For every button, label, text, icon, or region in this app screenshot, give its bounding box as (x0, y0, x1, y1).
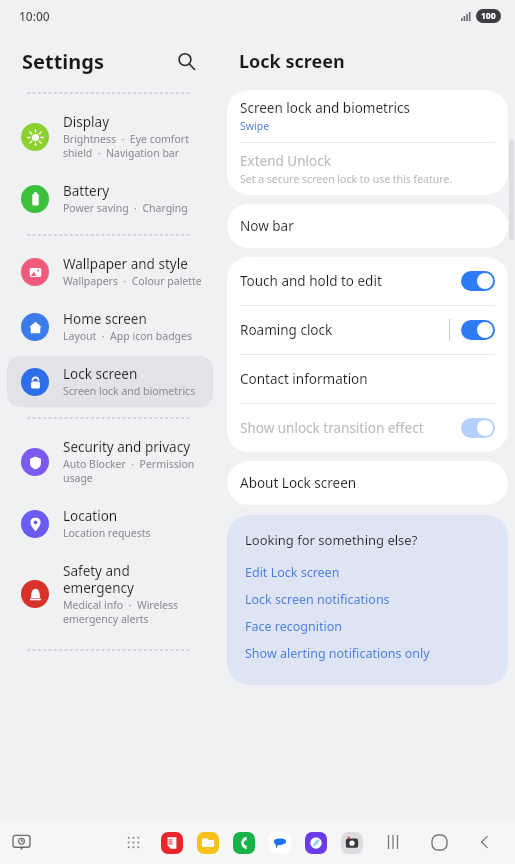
button[interactable]: Now bar (227, 204, 508, 248)
staticText: Power saving · Charging (63, 201, 188, 215)
button[interactable]: Security and privacy (7, 429, 213, 494)
button[interactable]: Show alerting notifications only (245, 640, 430, 667)
button[interactable]: messages (266, 829, 293, 856)
staticText: Display (63, 113, 110, 131)
button[interactable]: Edit Lock screen (245, 559, 340, 586)
button[interactable]: Toggle (461, 271, 495, 291)
button[interactable]: Safety and emergency (7, 553, 213, 635)
button[interactable]: Toggle (461, 320, 495, 340)
staticText: Safety and emergency (63, 562, 203, 597)
staticText: Set a secure screen lock to use this fea… (240, 172, 453, 186)
button[interactable]: Show unlock transition effect (227, 404, 508, 452)
staticText: Show alerting notifications only (245, 645, 430, 662)
button[interactable]: Recents (375, 824, 411, 860)
button[interactable]: files (194, 829, 221, 856)
staticText: Battery (63, 182, 110, 200)
button[interactable]: Battery (7, 173, 213, 224)
button[interactable]: Screen lock and biometrics (227, 90, 508, 142)
staticText: Location (63, 507, 118, 525)
button[interactable]: Roaming clock (227, 306, 508, 354)
staticText: Screen lock and biometrics (63, 384, 196, 398)
staticText: Security and privacy (63, 438, 191, 456)
button[interactable]: Recents widget (6, 827, 36, 857)
staticText: Brightness · Eye comfort shield · Naviga… (63, 132, 203, 160)
button[interactable]: Home screen (7, 301, 213, 352)
button[interactable]: Search (168, 43, 204, 79)
staticText: Show unlock transition effect (240, 419, 461, 437)
staticText: Settings (22, 48, 104, 75)
staticText: Roaming clock (240, 321, 449, 339)
staticText: Now bar (240, 217, 294, 235)
button[interactable]: phone (230, 829, 257, 856)
staticText: 10:00 (19, 8, 50, 24)
button[interactable]: Toggle (461, 418, 495, 438)
staticText: About Lock screen (240, 474, 357, 492)
staticText: Lock screen notifications (245, 591, 390, 608)
button[interactable]: Location (7, 498, 213, 549)
button[interactable]: About Lock screen (227, 461, 508, 505)
staticText: Location requests (63, 526, 151, 540)
button[interactable]: Apps (118, 827, 148, 857)
button[interactable]: Face recognition (245, 613, 342, 640)
button[interactable]: Touch and hold to edit (227, 257, 508, 305)
staticText: Auto Blocker · Permission usage (63, 457, 203, 485)
button[interactable]: Contact information (227, 355, 508, 403)
staticText: Looking for something else? (245, 531, 418, 549)
staticText: Swipe (240, 119, 270, 133)
button[interactable]: Extend Unlock (227, 143, 508, 195)
staticText: Layout · App icon badges (63, 329, 193, 343)
staticText: Medical info · Wireless emergency alerts (63, 598, 203, 626)
staticText: Screen lock and biometrics (240, 99, 410, 117)
staticText: Extend Unlock (240, 152, 331, 170)
button[interactable]: Lock screen notifications (245, 586, 390, 613)
button[interactable]: internet (302, 829, 329, 856)
button[interactable]: Home (421, 824, 457, 860)
button[interactable]: Lock screen (7, 356, 213, 407)
staticText: Edit Lock screen (245, 564, 340, 581)
staticText: Lock screen (239, 49, 345, 74)
staticText: Home screen (63, 310, 147, 328)
staticText: Wallpaper and style (63, 255, 188, 273)
button[interactable]: Display (7, 104, 213, 169)
button[interactable]: camera (338, 829, 365, 856)
staticText: Touch and hold to edit (240, 272, 461, 290)
staticText: Wallpapers · Colour palette (63, 274, 202, 288)
staticText: Contact information (240, 370, 368, 388)
staticText: Face recognition (245, 618, 342, 635)
button[interactable]: notes (158, 829, 185, 856)
staticText: Lock screen (63, 365, 138, 383)
staticText: 100 (481, 10, 496, 22)
button[interactable]: Wallpaper and style (7, 246, 213, 297)
button[interactable]: Back (467, 824, 503, 860)
